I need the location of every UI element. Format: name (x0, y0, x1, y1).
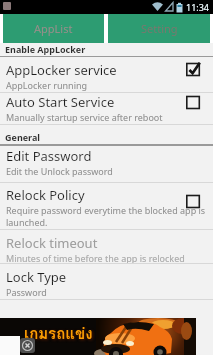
staticText: Edit Password (6, 147, 92, 165)
staticText: AppLocker running (6, 79, 88, 91)
staticText: 11:34 (186, 1, 210, 13)
staticText: AppLocker service (6, 61, 117, 79)
button[interactable]: AppList (3, 14, 104, 43)
staticText: General (5, 131, 41, 143)
staticText: Edit the Unlock password (6, 165, 113, 177)
button[interactable]: Relock Policy (0, 183, 213, 229)
staticText: Lock Type (6, 268, 67, 286)
staticText: Relock timeout (6, 234, 98, 252)
button[interactable]: AppLocker service (0, 57, 213, 92)
staticText: Enable AppLocker (5, 43, 86, 55)
button[interactable]: Lock Type (0, 264, 213, 299)
button[interactable]: Relock timeout (0, 230, 213, 263)
staticText: Relock Policy (6, 186, 85, 204)
staticText: Auto Start Service (6, 93, 115, 111)
staticText: Require password everytime the blocked a… (6, 204, 206, 216)
button[interactable]: Edit Password (0, 146, 213, 182)
staticText: Password (6, 286, 47, 298)
staticText: launched. (6, 216, 48, 228)
staticText: Manually startup service after reboot (6, 111, 163, 123)
staticText: Minutes of time before the app is relock… (6, 252, 185, 263)
button[interactable]: เกมรถแข่ง (0, 318, 196, 355)
staticText: เกมรถแข่ง (24, 322, 93, 346)
button[interactable]: Setting (108, 14, 210, 43)
button[interactable]: Auto Start Service (0, 93, 213, 124)
staticText: AppList (34, 21, 73, 36)
button[interactable] (20, 338, 35, 353)
staticText: Setting (141, 21, 178, 36)
